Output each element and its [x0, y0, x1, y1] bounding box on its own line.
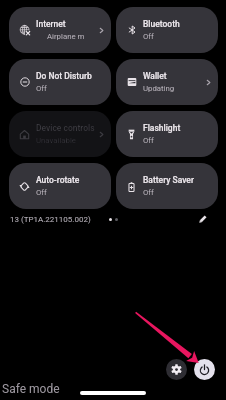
- button[interactable]: Battery Saver: [116, 163, 218, 209]
- button[interactable]: Do Not Disturb: [9, 59, 111, 105]
- button[interactable]: Edit tiles: [194, 211, 210, 227]
- staticText: Off: [36, 84, 47, 93]
- staticText: Internet: [36, 19, 66, 29]
- button[interactable]: Flashlight: [116, 111, 218, 157]
- staticText: Off: [143, 188, 154, 197]
- staticText: Off: [36, 188, 47, 197]
- staticText: Wallet: [143, 71, 167, 81]
- staticText: Bluetooth: [143, 19, 180, 29]
- staticText: Off: [143, 32, 154, 41]
- staticText: Safe mode: [2, 382, 60, 396]
- staticText: Updating: [143, 84, 175, 93]
- button[interactable]: Bluetooth: [116, 7, 218, 53]
- staticText: 13 (TP1A.221105.002): [10, 215, 91, 224]
- button[interactable]: Wallet: [116, 59, 218, 105]
- staticText: Do Not Disturb: [36, 71, 92, 81]
- staticText: Unavailable: [36, 136, 76, 145]
- button[interactable]: Auto-rotate: [9, 163, 111, 209]
- staticText: Auto-rotate: [36, 175, 80, 185]
- button[interactable]: Device controls: [9, 111, 111, 157]
- staticText: Off: [143, 136, 154, 145]
- staticText: Airplane m: [47, 32, 85, 41]
- button[interactable]: Internet: [9, 7, 111, 53]
- staticText: Battery Saver: [143, 175, 194, 185]
- staticText: Flashlight: [143, 123, 181, 133]
- staticText: Device controls: [36, 123, 95, 133]
- button[interactable]: Power: [194, 359, 215, 380]
- button[interactable]: Settings: [166, 359, 187, 380]
